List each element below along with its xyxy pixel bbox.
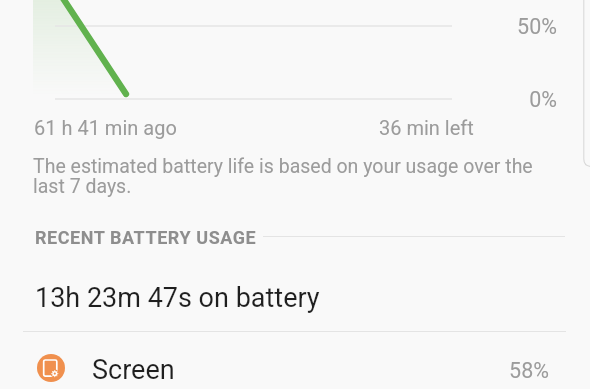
staticText: Screen [92,354,175,386]
button[interactable]: Screen battery usage [0,331,590,389]
staticText: 50% [457,14,557,39]
other: Screen battery usage [37,354,65,382]
staticText: 61 h 41 min ago [34,116,177,139]
staticText: 36 min left [379,116,474,139]
staticText: RECENT BATTERY USAGE [35,227,257,248]
staticText: The estimated battery life is based on y… [33,155,533,198]
staticText: 58% [449,358,549,383]
staticText: 13h 23m 47s on battery [35,282,320,314]
staticText: 0% [457,87,557,112]
